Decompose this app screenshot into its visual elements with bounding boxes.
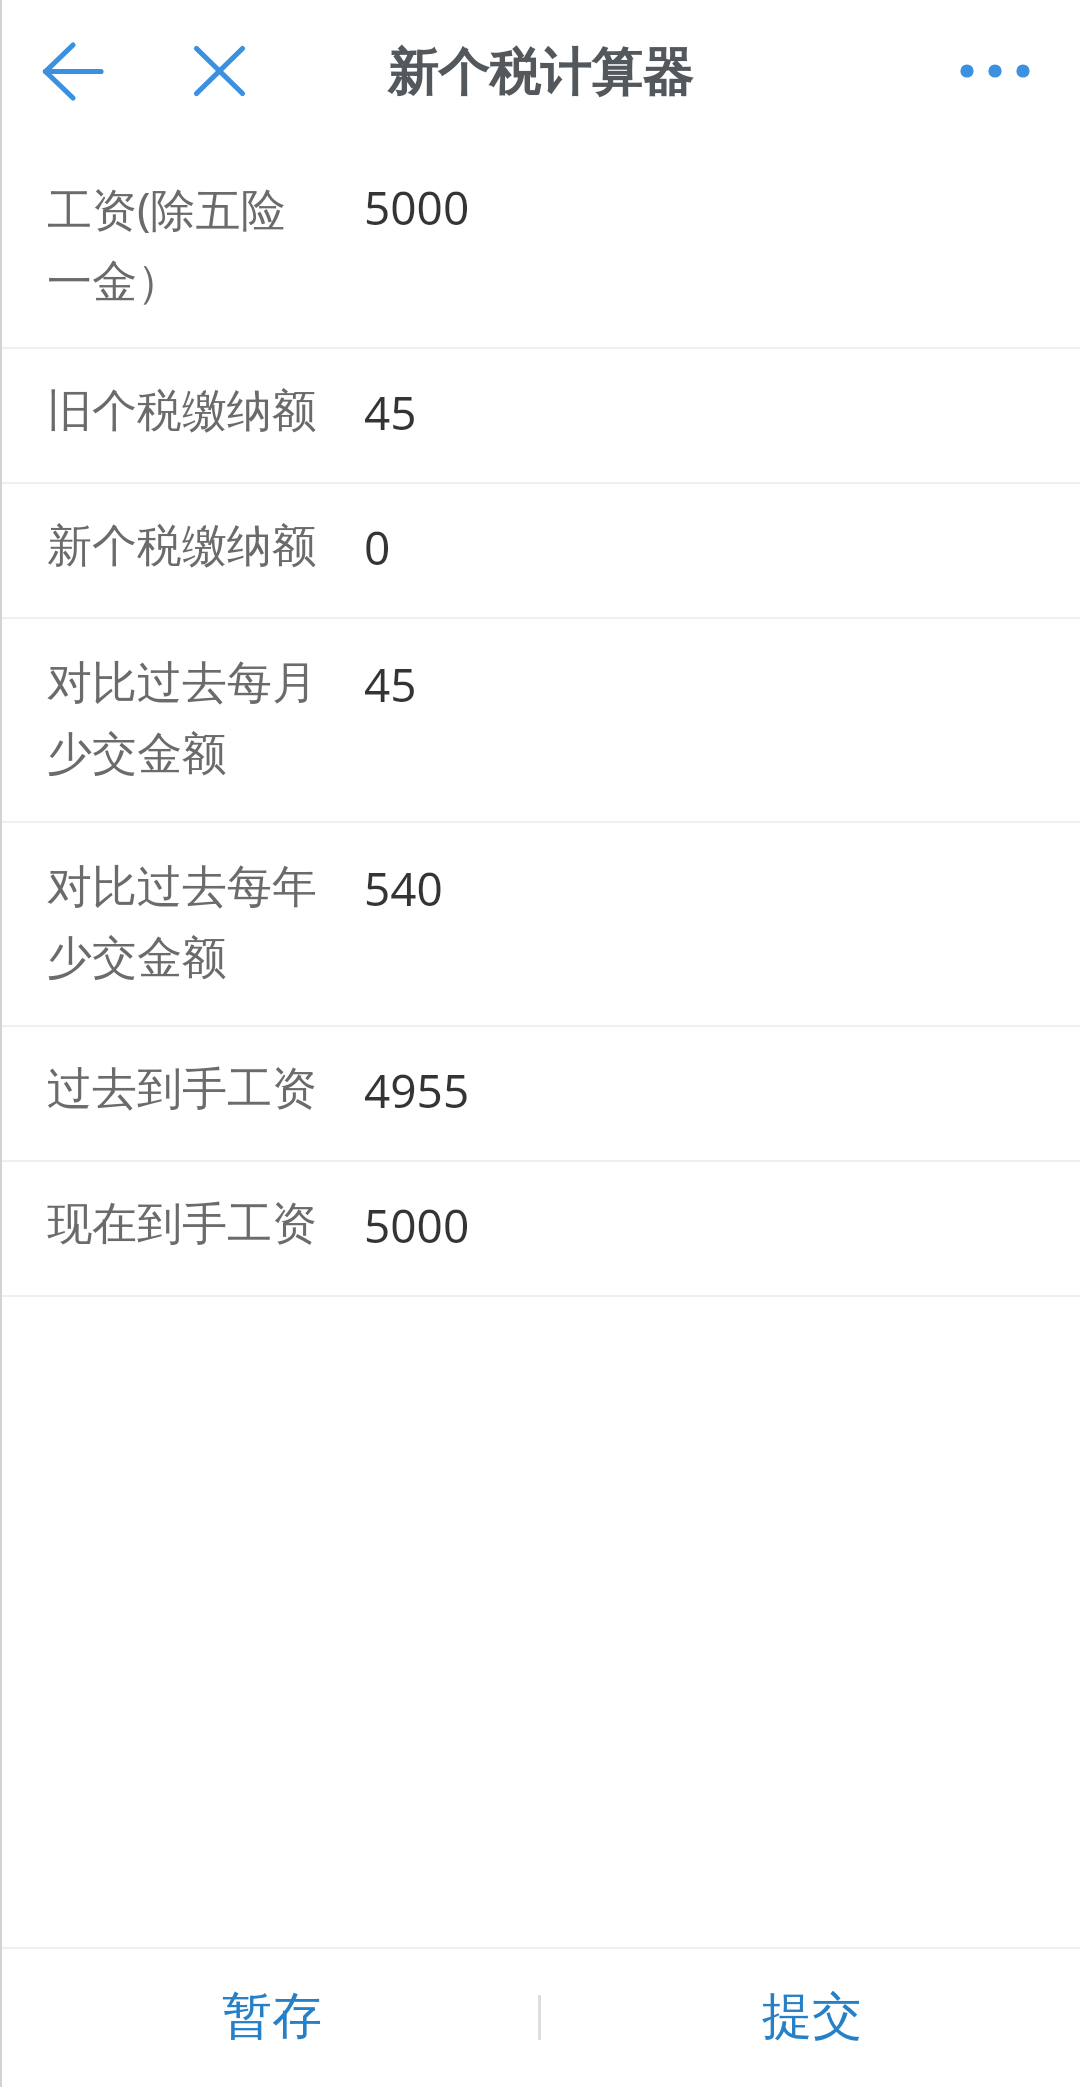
staticText: 540 [364, 857, 443, 920]
staticText: 旧个税缴纳额 [47, 383, 317, 440]
staticText: 0 [364, 516, 391, 579]
button[interactable]: 暂存 [0, 1949, 540, 2087]
button[interactable]: 对比过去每年少交金额 [0, 823, 1080, 1027]
staticText: 过去到手工资 [47, 1061, 317, 1118]
button[interactable]: 过去到手工资 [0, 1027, 1080, 1162]
button[interactable]: More options [947, 21, 1047, 121]
staticText: 现在到手工资 [47, 1196, 317, 1253]
button[interactable]: 工资(除五险一金） [0, 138, 1080, 349]
staticText: 对比过去每年少交金额 [47, 859, 325, 986]
staticText: 45 [364, 381, 417, 444]
button[interactable]: 现在到手工资 [0, 1162, 1080, 1297]
staticText: 4955 [364, 1059, 470, 1122]
staticText: 对比过去每月少交金额 [47, 655, 325, 782]
staticText: 新个税缴纳额 [47, 518, 317, 575]
button[interactable]: Back [23, 20, 123, 120]
staticText: 5000 [364, 1194, 470, 1257]
button[interactable]: 新个税缴纳额 [0, 484, 1080, 619]
staticText: 45 [364, 653, 417, 716]
staticText: 暂存 [222, 1985, 322, 2048]
staticText: 新个税计算器 [387, 41, 693, 105]
button[interactable]: 对比过去每月少交金额 [0, 619, 1080, 823]
button[interactable]: 提交 [540, 1949, 1080, 2087]
staticText: 提交 [762, 1985, 862, 2048]
staticText: 工资(除五险一金） [47, 178, 325, 310]
button[interactable]: Close [170, 22, 270, 122]
button[interactable]: 旧个税缴纳额 [0, 349, 1080, 484]
staticText: 5000 [364, 176, 470, 239]
